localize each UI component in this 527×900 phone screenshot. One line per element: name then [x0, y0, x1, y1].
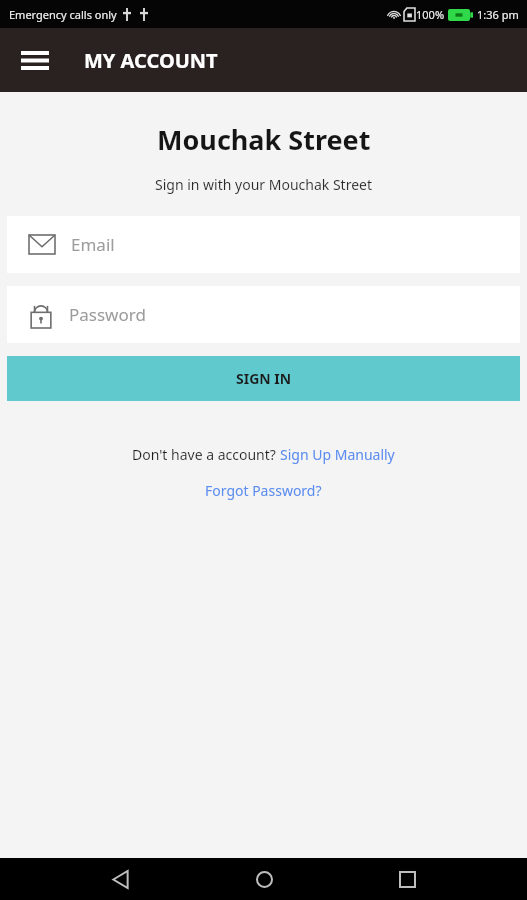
button[interactable]: Forgot Password?	[205, 481, 322, 500]
staticText: Email	[71, 233, 115, 256]
staticText: Password	[69, 303, 146, 326]
button[interactable]: Recent apps	[383, 858, 431, 900]
button[interactable]: Home	[240, 858, 288, 900]
button[interactable]: Password	[7, 286, 520, 343]
staticText: MY ACCOUNT	[84, 47, 218, 74]
staticText: Mouchak Street	[157, 121, 371, 158]
staticText: Forgot Password?	[205, 481, 322, 500]
staticText: 1:36 pm	[477, 7, 519, 22]
button[interactable]: Email	[7, 216, 520, 273]
button[interactable]: Open navigation menu	[10, 35, 60, 85]
button[interactable]: Back	[96, 858, 144, 900]
button[interactable]: Sign Up Manually	[280, 445, 395, 464]
button[interactable]: SIGN IN	[7, 356, 520, 401]
staticText: 100%	[416, 7, 445, 22]
staticText: Sign Up Manually	[280, 445, 395, 464]
staticText: SIGN IN	[236, 369, 292, 388]
staticText: Sign in with your Mouchak Street	[155, 175, 372, 194]
staticText: Emergency calls only	[9, 7, 117, 22]
staticText: Don't have a account?	[132, 445, 280, 464]
